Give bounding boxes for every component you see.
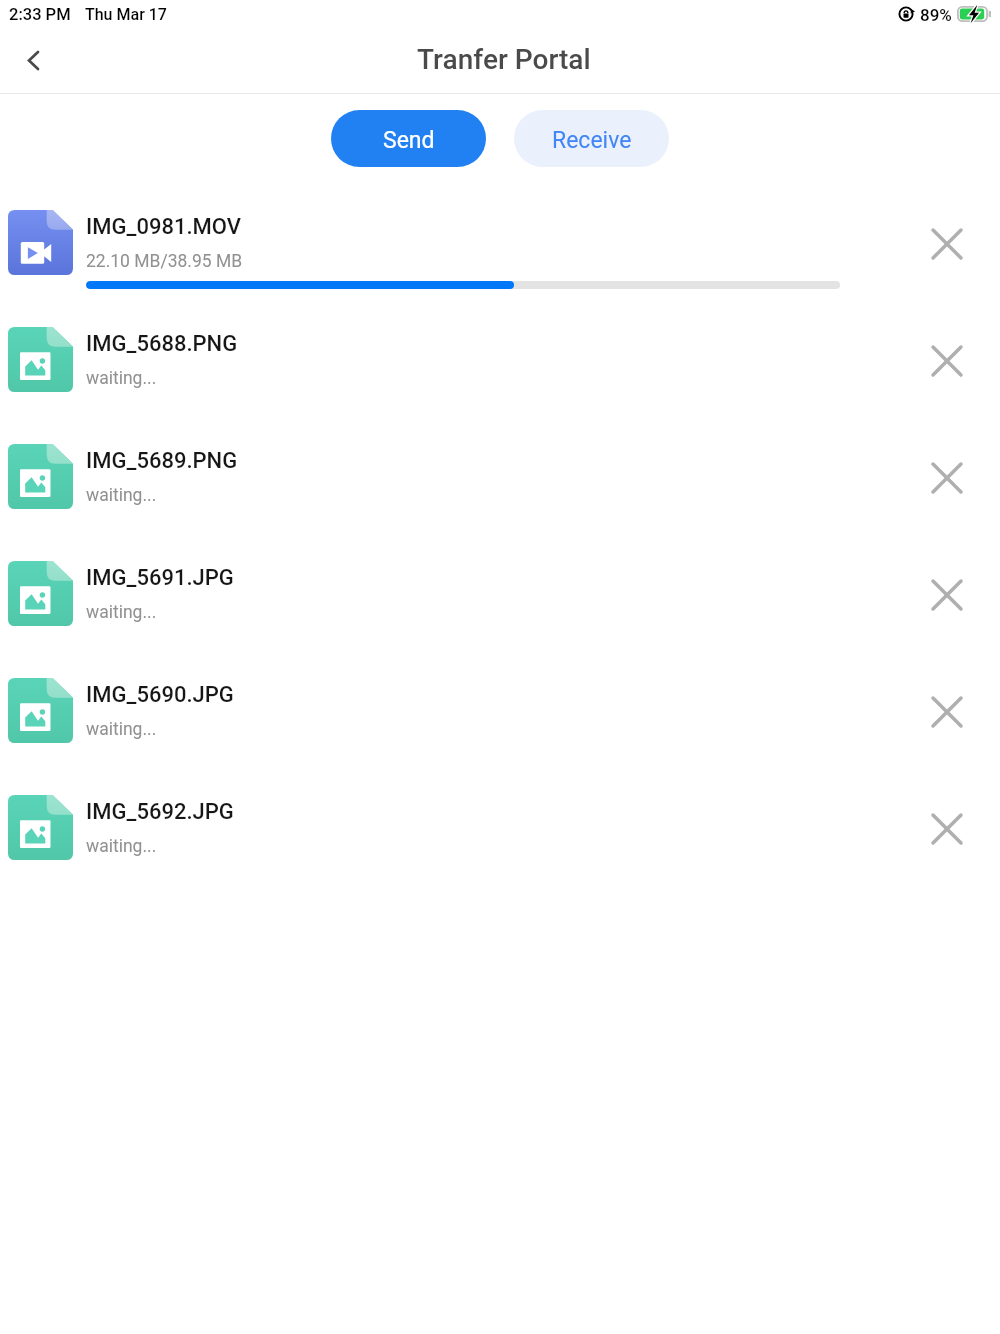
staticText: 89% bbox=[920, 5, 952, 25]
staticText: IMG_5688.PNG bbox=[86, 331, 238, 357]
button[interactable]: Cancel bbox=[917, 799, 977, 859]
button[interactable]: Receive bbox=[514, 110, 669, 167]
button[interactable]: IMG_5688.PNG bbox=[0, 321, 1000, 431]
button[interactable]: Cancel bbox=[917, 565, 977, 625]
button[interactable]: Cancel bbox=[917, 448, 977, 508]
staticText: IMG_5690.JPG bbox=[86, 682, 234, 708]
button[interactable]: IMG_5692.JPG bbox=[0, 789, 1000, 899]
staticText: 2:33 PM bbox=[9, 5, 71, 24]
button[interactable]: IMG_5690.JPG bbox=[0, 672, 1000, 782]
button[interactable]: Cancel bbox=[917, 214, 977, 274]
staticText: waiting... bbox=[86, 602, 157, 623]
staticText: IMG_5691.JPG bbox=[86, 565, 234, 591]
staticText: IMG_5692.JPG bbox=[86, 799, 234, 825]
staticText: Send bbox=[383, 127, 435, 154]
button[interactable]: IMG_0981.MOV bbox=[0, 204, 1000, 314]
staticText: waiting... bbox=[86, 485, 157, 506]
staticText: waiting... bbox=[86, 836, 157, 857]
button[interactable]: Send bbox=[331, 110, 486, 167]
button[interactable]: Cancel bbox=[917, 682, 977, 742]
staticText: IMG_0981.MOV bbox=[86, 214, 241, 240]
staticText: 22.10 MB/38.95 MB bbox=[86, 251, 243, 272]
staticText: waiting... bbox=[86, 719, 157, 740]
button[interactable]: Back bbox=[9, 36, 57, 84]
button[interactable]: IMG_5691.JPG bbox=[0, 555, 1000, 665]
button[interactable]: IMG_5689.PNG bbox=[0, 438, 1000, 548]
staticText: waiting... bbox=[86, 368, 157, 389]
staticText: Thu Mar 17 bbox=[85, 5, 167, 24]
staticText: Receive bbox=[552, 127, 632, 154]
button[interactable]: Cancel bbox=[917, 331, 977, 391]
staticText: IMG_5689.PNG bbox=[86, 448, 238, 474]
staticText: Tranfer Portal bbox=[417, 43, 591, 76]
